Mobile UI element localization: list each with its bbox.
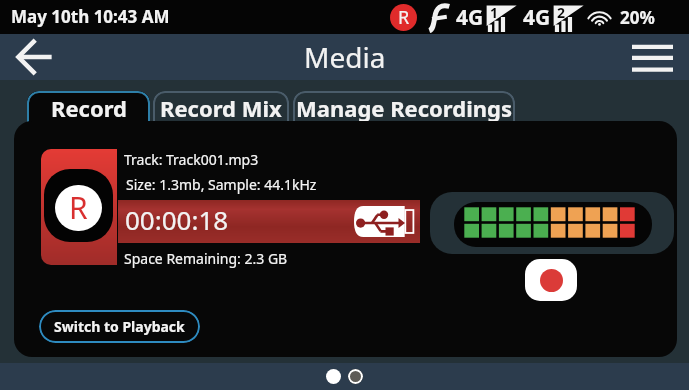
staticText: R: [398, 5, 410, 30]
staticText: Manage Recordings: [296, 93, 512, 123]
staticText: R: [69, 187, 88, 228]
staticText: Space Remaining: 2.3 GB: [124, 249, 288, 268]
button[interactable]: Back: [11, 34, 57, 80]
staticText: Media: [304, 38, 386, 76]
button[interactable]: Switch to Playback: [39, 310, 200, 343]
staticText: 00:00:18: [125, 202, 229, 237]
staticText: Record: [51, 93, 127, 123]
button[interactable]: Manage Recordings: [293, 91, 515, 124]
staticText: 4G: [523, 3, 551, 32]
button[interactable]: Menu: [627, 34, 677, 80]
staticText: 1: [490, 3, 499, 22]
staticText: Switch to Playback: [54, 317, 185, 336]
staticText: Record Mix: [160, 93, 282, 123]
staticText: May 10th 10:43 AM: [11, 5, 170, 28]
staticText: Track: Track001.mp3: [124, 150, 259, 169]
button[interactable]: Record: [27, 91, 150, 124]
button[interactable]: Record: [525, 259, 577, 301]
staticText: Size: 1.3mb, Sample: 44.1kHz: [126, 175, 317, 194]
staticText: 20%: [620, 6, 655, 29]
button[interactable]: Record Mix: [153, 91, 289, 124]
staticText: 2: [557, 3, 566, 22]
staticText: 4G: [456, 3, 484, 32]
